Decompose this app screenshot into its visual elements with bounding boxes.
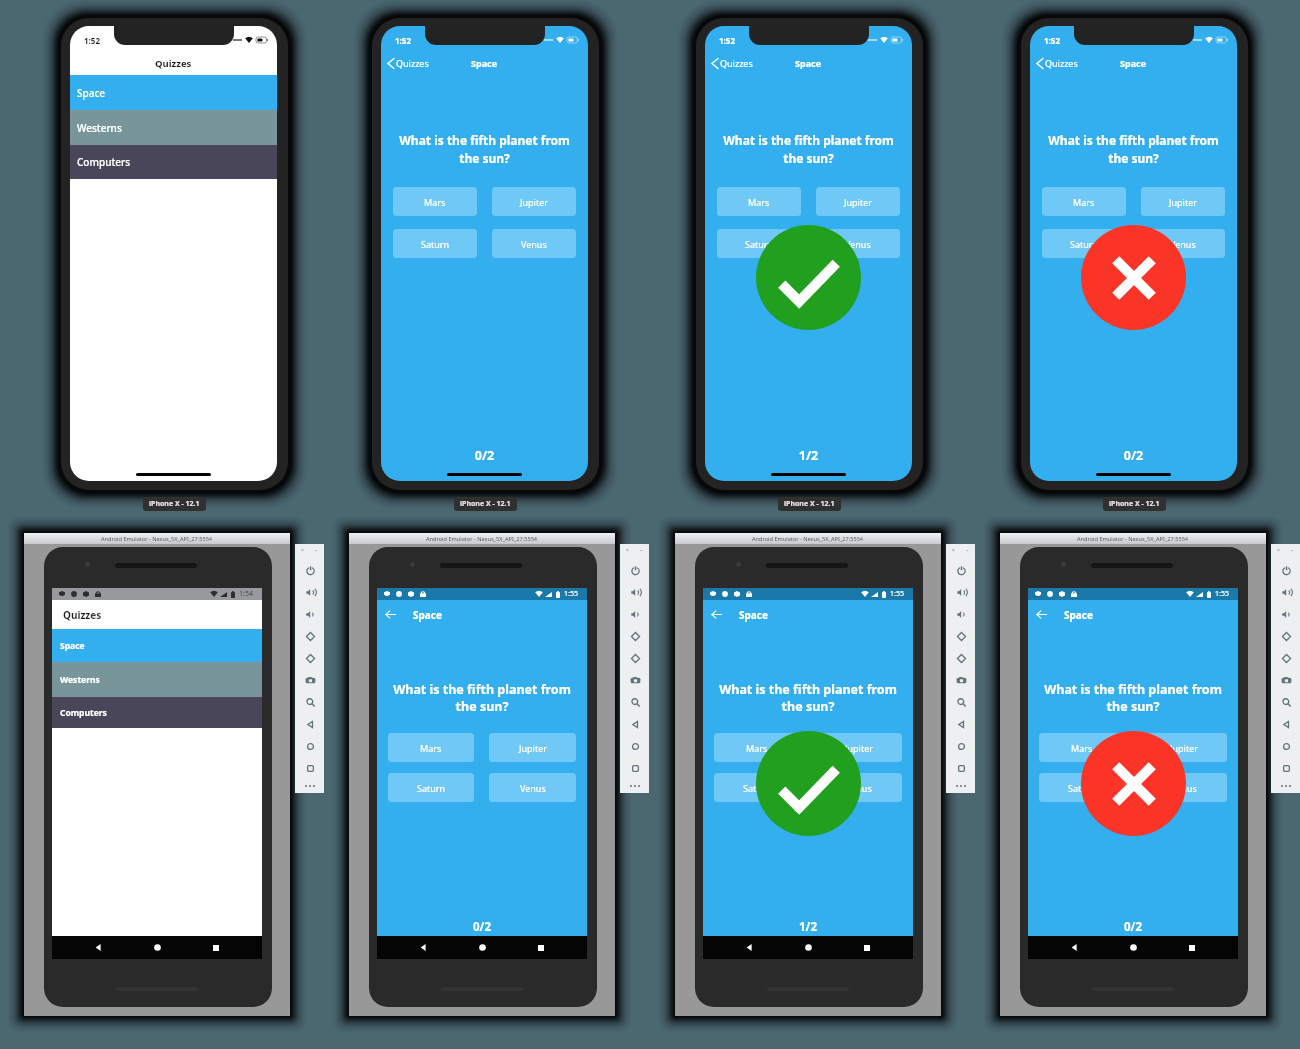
button[interactable]: Computers <box>52 697 262 728</box>
button[interactable]: Home <box>146 936 169 959</box>
button[interactable]: Zoom <box>624 691 646 713</box>
button[interactable]: Saturn <box>393 229 477 258</box>
button[interactable]: Volume down <box>1275 603 1297 625</box>
button[interactable]: Rotate right <box>950 647 972 669</box>
button[interactable]: Jupiter <box>815 733 902 762</box>
button[interactable]: Home <box>624 735 646 757</box>
button[interactable]: Back <box>87 936 110 959</box>
button[interactable]: Home <box>299 735 321 757</box>
button[interactable]: Back to Quizzes <box>388 57 429 69</box>
staticText: Venus <box>1170 238 1196 250</box>
button[interactable]: Zoom <box>950 691 972 713</box>
staticText: Android Emulator - Nexus_5X_API_27:5554 <box>101 535 213 543</box>
button[interactable]: Volume down <box>624 603 646 625</box>
button[interactable]: Home <box>797 936 820 959</box>
button[interactable]: Volume up <box>950 581 972 603</box>
button[interactable]: Venus <box>492 229 576 258</box>
button[interactable]: More <box>624 780 646 792</box>
button[interactable]: Rotate left <box>624 625 646 647</box>
button[interactable]: Overview <box>299 757 321 779</box>
button[interactable]: Volume down <box>299 603 321 625</box>
button[interactable]: Jupiter <box>492 187 576 216</box>
staticText: Westerns <box>60 674 100 686</box>
button[interactable]: Volume up <box>299 581 321 603</box>
button[interactable]: Mars <box>1039 733 1125 762</box>
button[interactable]: Space <box>70 75 277 110</box>
button[interactable]: Home <box>1275 735 1297 757</box>
button[interactable]: Zoom <box>1275 691 1297 713</box>
button[interactable]: Back <box>738 936 761 959</box>
button[interactable]: Rotate right <box>299 647 321 669</box>
button[interactable]: Space <box>52 629 262 662</box>
staticText: Jupiter <box>1169 196 1197 208</box>
button[interactable]: Home <box>1122 936 1145 959</box>
button[interactable]: Recents <box>529 936 552 959</box>
button[interactable]: Power <box>624 559 646 581</box>
button[interactable]: Mars <box>714 733 800 762</box>
button[interactable]: Saturn <box>714 773 800 802</box>
button[interactable]: Venus <box>815 773 902 802</box>
button[interactable]: Power <box>1275 559 1297 581</box>
button[interactable]: Recents <box>855 936 878 959</box>
button[interactable]: Rotate right <box>1275 647 1297 669</box>
button[interactable]: Power <box>299 559 321 581</box>
button[interactable]: Saturn <box>1042 229 1126 258</box>
button[interactable]: Jupiter <box>1140 733 1227 762</box>
button[interactable]: Home <box>471 936 494 959</box>
button[interactable]: Overview <box>1275 757 1297 779</box>
button[interactable]: Back <box>412 936 435 959</box>
button[interactable]: Back <box>624 713 646 735</box>
button[interactable]: Volume down <box>950 603 972 625</box>
button[interactable]: Zoom <box>299 691 321 713</box>
button[interactable]: Westerns <box>70 110 277 145</box>
button[interactable]: Screenshot <box>624 669 646 691</box>
button[interactable]: Volume up <box>624 581 646 603</box>
button[interactable]: Rotate left <box>950 625 972 647</box>
button[interactable]: Screenshot <box>950 669 972 691</box>
button[interactable]: Volume up <box>1275 581 1297 603</box>
button[interactable]: Saturn <box>1039 773 1125 802</box>
button[interactable]: More <box>299 780 321 792</box>
button[interactable]: Venus <box>816 229 900 258</box>
button[interactable]: Saturn <box>717 229 801 258</box>
button[interactable]: Back <box>377 601 404 628</box>
button[interactable]: Rotate left <box>1275 625 1297 647</box>
button[interactable]: Home <box>950 735 972 757</box>
button[interactable]: Computers <box>70 145 277 179</box>
button[interactable]: More <box>950 780 972 792</box>
button[interactable]: Back <box>299 713 321 735</box>
button[interactable]: Back <box>1063 936 1086 959</box>
button[interactable]: Recents <box>1180 936 1203 959</box>
button[interactable]: Back to Quizzes <box>1037 57 1078 69</box>
button[interactable]: Overview <box>950 757 972 779</box>
button[interactable]: Back <box>1028 601 1055 628</box>
button[interactable]: Screenshot <box>299 669 321 691</box>
button[interactable]: Mars <box>717 187 801 216</box>
staticText: Jupiter <box>1170 742 1198 754</box>
button[interactable]: Jupiter <box>489 733 576 762</box>
button[interactable]: Power <box>950 559 972 581</box>
button[interactable]: Saturn <box>388 773 474 802</box>
button[interactable]: Rotate right <box>624 647 646 669</box>
button[interactable]: Mars <box>1042 187 1126 216</box>
button[interactable]: Mars <box>393 187 477 216</box>
button[interactable]: Jupiter <box>816 187 900 216</box>
staticText: Venus <box>1171 782 1197 794</box>
button[interactable]: Mars <box>388 733 474 762</box>
button[interactable]: Back <box>1275 713 1297 735</box>
staticText: Space <box>1064 608 1093 622</box>
button[interactable]: Jupiter <box>1141 187 1225 216</box>
button[interactable]: Back <box>703 601 730 628</box>
button[interactable]: Venus <box>1140 773 1227 802</box>
staticText: Space <box>1120 57 1147 69</box>
button[interactable]: Rotate left <box>299 625 321 647</box>
button[interactable]: Recents <box>204 936 227 959</box>
button[interactable]: Back to Quizzes <box>712 57 753 69</box>
button[interactable]: Venus <box>489 773 576 802</box>
button[interactable]: Back <box>950 713 972 735</box>
button[interactable]: Westerns <box>52 662 262 697</box>
button[interactable]: Overview <box>624 757 646 779</box>
button[interactable]: More <box>1275 780 1297 792</box>
button[interactable]: Screenshot <box>1275 669 1297 691</box>
button[interactable]: Venus <box>1141 229 1225 258</box>
